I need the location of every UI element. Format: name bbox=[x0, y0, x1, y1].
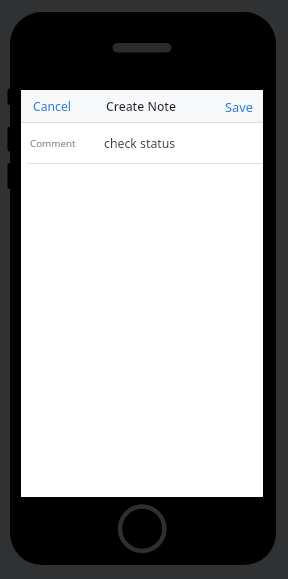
staticText: check status bbox=[104, 135, 176, 152]
button[interactable]: Comment bbox=[21, 123, 263, 164]
button[interactable]: Save bbox=[225, 98, 263, 115]
staticText: Cancel bbox=[33, 98, 71, 115]
staticText: Save bbox=[225, 98, 253, 115]
staticText: Comment bbox=[30, 137, 76, 150]
button[interactable]: Cancel bbox=[21, 98, 71, 115]
staticText: Create Note bbox=[106, 98, 177, 115]
